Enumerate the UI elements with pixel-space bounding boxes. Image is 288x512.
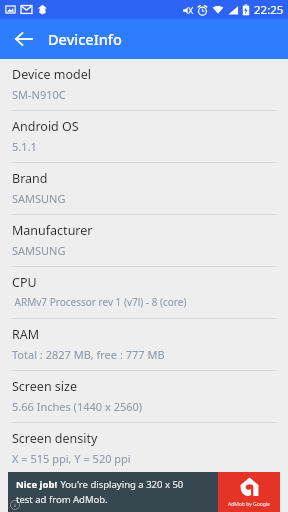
staticText: SAMSUNG bbox=[12, 243, 66, 258]
staticText: Screen density bbox=[12, 430, 98, 447]
staticText: ARMv7 Processor rev 1 (v7l) - 8 (core) bbox=[12, 295, 187, 309]
staticText: Device model bbox=[12, 66, 92, 83]
staticText: Android OS bbox=[12, 118, 79, 135]
staticText: Total : 2827 MB, free : 777 MB bbox=[12, 347, 165, 362]
staticText: RAM bbox=[12, 326, 40, 343]
staticText: AdMob by Google bbox=[228, 501, 270, 508]
button[interactable]: CPU bbox=[0, 267, 288, 319]
staticText: test ad from AdMob. bbox=[16, 493, 108, 506]
button[interactable]: Android OS bbox=[0, 111, 288, 163]
staticText: 5.1.1 bbox=[12, 139, 37, 154]
staticText: Screen size bbox=[12, 378, 77, 395]
staticText: 22:25 bbox=[254, 2, 284, 18]
button[interactable]: Battery bbox=[0, 475, 288, 512]
staticText: You're displaying a 320 x 50 bbox=[58, 478, 184, 491]
staticText: X = 515 ppi, Y = 520 ppi bbox=[12, 451, 131, 466]
staticText: 5.66 Inches (1440 x 2560) bbox=[12, 399, 143, 414]
staticText: DeviceInfo bbox=[48, 29, 122, 49]
staticText: Nice job! bbox=[16, 478, 58, 491]
button[interactable]: Back bbox=[8, 23, 40, 55]
staticText: Battery bbox=[12, 482, 55, 499]
button[interactable]: Brand bbox=[0, 163, 288, 215]
staticText: Brand bbox=[12, 170, 48, 187]
staticText: SAMSUNG bbox=[12, 191, 66, 206]
button[interactable]: Screen size bbox=[0, 371, 288, 423]
button[interactable]: RAM bbox=[0, 319, 288, 371]
button[interactable]: Screen density bbox=[0, 423, 288, 475]
button[interactable]: Manufacturer bbox=[0, 215, 288, 267]
button[interactable]: Device model bbox=[0, 59, 288, 111]
staticText: Manufacturer bbox=[12, 222, 93, 239]
button[interactable]: Nice job! bbox=[8, 472, 280, 512]
staticText: CPU bbox=[12, 274, 37, 291]
staticText: SM-N910C bbox=[12, 87, 66, 102]
